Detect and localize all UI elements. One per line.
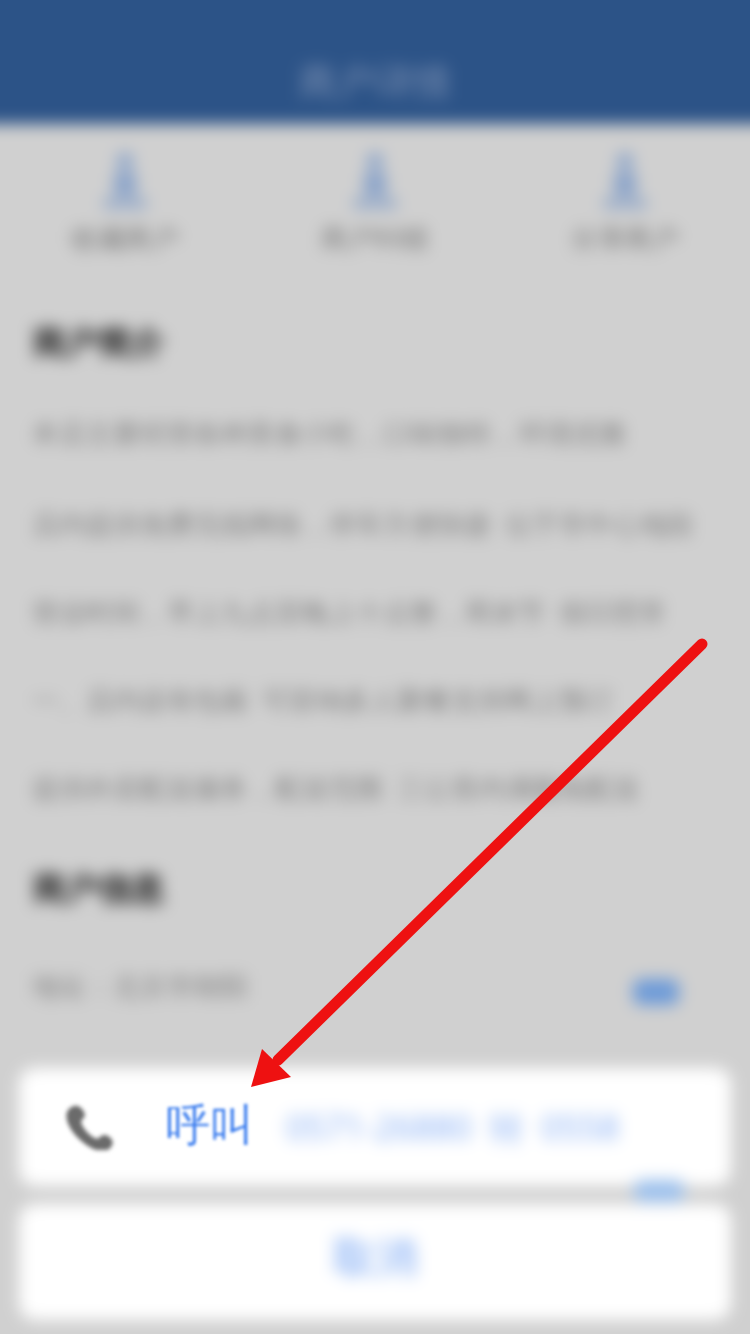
button[interactable]: 取消	[19, 1204, 731, 1320]
button[interactable]: 商户详情	[0, 20, 750, 144]
staticText: 地址：北京市朝阳	[32, 970, 248, 1004]
staticText: 商户简介	[32, 322, 164, 364]
button[interactable]: Action	[500, 150, 750, 256]
staticText: 收藏商户	[71, 222, 179, 256]
staticText: 商户简介	[33, 323, 165, 365]
other: Call	[66, 1100, 116, 1150]
button[interactable]: Action	[0, 150, 250, 256]
staticText: 商户信息	[33, 869, 165, 911]
other: Action	[103, 150, 147, 210]
staticText: 呼叫	[166, 1098, 254, 1153]
staticText: 商户纠错	[321, 222, 429, 256]
staticText: 分享商户	[571, 222, 679, 256]
staticText: 一、店内设有包厢 可容纳多人聚餐支持网上预订	[32, 681, 614, 718]
button[interactable]: Action	[250, 150, 500, 256]
other: Action	[353, 150, 397, 210]
staticText: 取消	[333, 1232, 417, 1285]
staticText: 店内提供免费无线网络，停车方便快捷 位于市中心地段	[32, 505, 695, 542]
staticText: 商户详情	[299, 58, 451, 106]
staticText: 提供外卖配送服务，配送范围 三公里内满额免配送	[32, 769, 641, 806]
staticText: 营业时间，早上九点至晚上十点整，周末节 假日照常	[32, 593, 668, 630]
button[interactable]: 0571-26880 转 0558	[19, 1068, 731, 1186]
staticText: 本店主要经营各种美食小吃，口味独特，环境优雅	[32, 417, 626, 451]
staticText: 商户信息	[32, 868, 164, 910]
staticText: 0571-26880 转 0558	[286, 1104, 620, 1150]
button[interactable]	[633, 979, 679, 1005]
other: Action	[603, 150, 647, 210]
